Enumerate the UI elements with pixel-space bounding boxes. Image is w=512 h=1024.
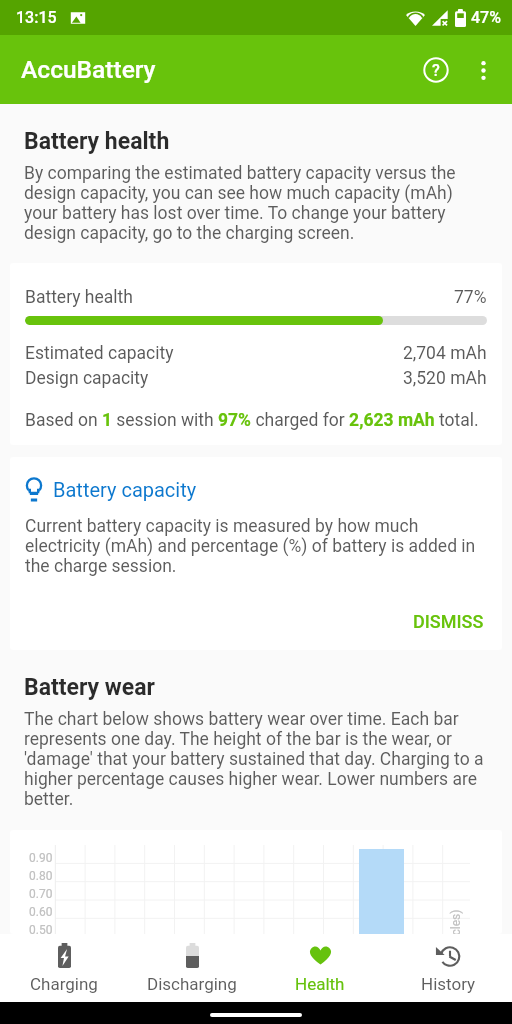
staticText: 0.90 <box>29 851 53 865</box>
staticText: Design capacity <box>25 368 149 389</box>
staticText: Battery capacity <box>53 478 197 501</box>
staticText: 0.60 <box>29 905 53 919</box>
button[interactable]: DISMISS <box>405 605 492 638</box>
staticText: 0.50 <box>29 923 53 934</box>
staticText: The chart below shows battery wear over … <box>24 709 488 809</box>
staticText: By comparing the estimated battery capac… <box>24 163 488 243</box>
staticText: Battery health <box>25 287 133 308</box>
button[interactable]: History <box>384 934 512 1002</box>
staticText: Health <box>295 974 345 994</box>
staticText: ? <box>432 61 440 80</box>
staticText: History <box>421 974 476 994</box>
staticText: 77% <box>454 287 487 308</box>
staticText: 13:15 <box>16 8 57 27</box>
staticText: Discharging <box>147 974 237 994</box>
staticText: Based on 1 session with 97% charged for … <box>25 410 479 431</box>
button[interactable]: Health <box>256 934 384 1002</box>
button[interactable]: Help <box>412 46 460 94</box>
staticText: DISMISS <box>413 611 484 632</box>
staticText: 47% <box>471 8 501 27</box>
button[interactable]: Charging <box>0 934 128 1002</box>
staticText: wear (cycles) <box>448 909 462 934</box>
staticText: Current battery capacity is measured by … <box>25 516 487 576</box>
staticText: 3,520 mAh <box>403 368 487 389</box>
staticText: AccuBattery <box>21 55 156 84</box>
staticText: Charging <box>30 974 98 994</box>
staticText: Battery wear <box>24 674 155 701</box>
staticText: Estimated capacity <box>25 343 174 364</box>
staticText: 0.70 <box>29 887 53 901</box>
staticText: 0.80 <box>29 869 53 883</box>
button[interactable]: Discharging <box>128 934 256 1002</box>
button[interactable]: More options <box>460 47 506 93</box>
staticText: Battery health <box>24 128 170 155</box>
staticText: 2,704 mAh <box>403 343 487 364</box>
